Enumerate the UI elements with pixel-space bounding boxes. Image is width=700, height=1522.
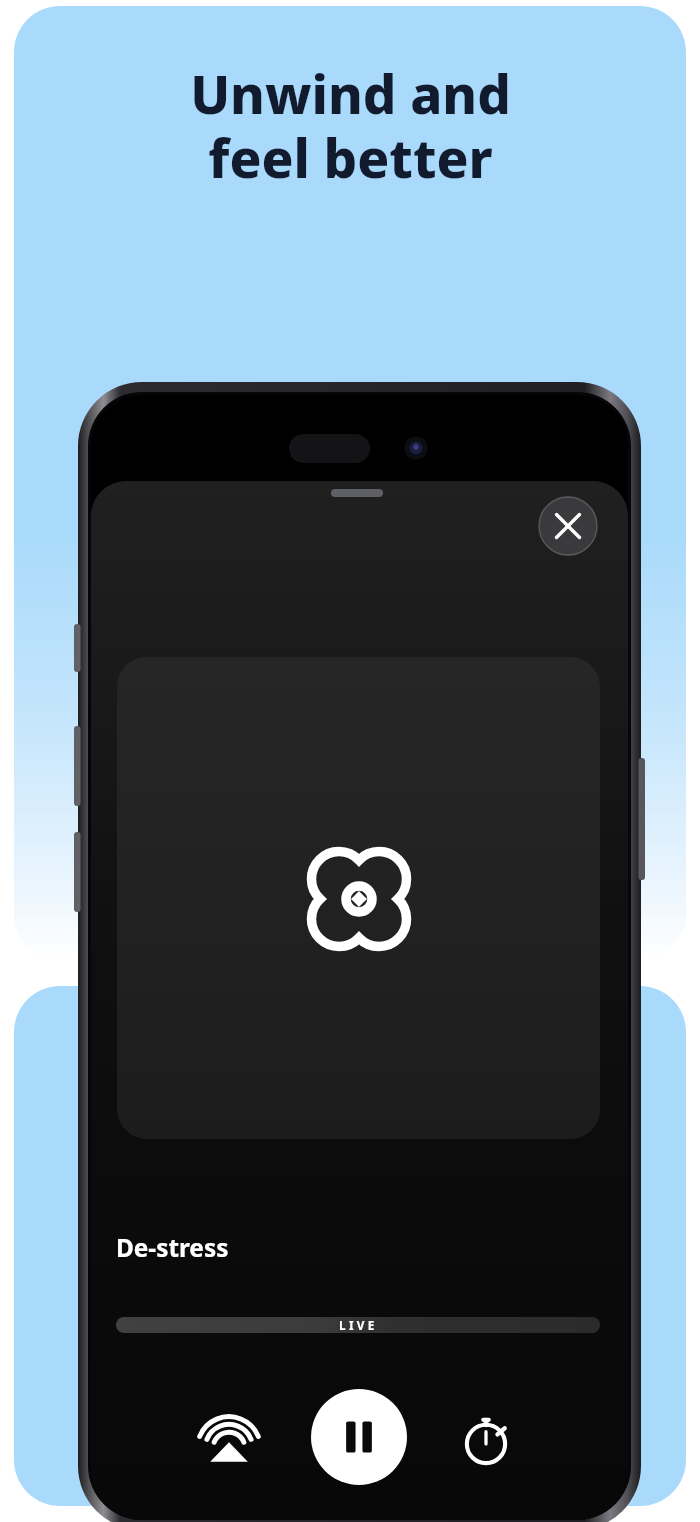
staticText: LIVE: [339, 1317, 378, 1333]
staticText: De-stress: [116, 1231, 229, 1264]
button[interactable]: [117, 657, 600, 1139]
button[interactable]: AirPlay: [196, 1406, 262, 1472]
button[interactable]: Sleep timer: [453, 1406, 519, 1472]
button[interactable]: Pause: [311, 1389, 407, 1485]
button[interactable]: Close: [539, 497, 597, 555]
staticText: Unwind and feel better: [190, 58, 511, 193]
button[interactable]: LIVE: [116, 1317, 600, 1333]
